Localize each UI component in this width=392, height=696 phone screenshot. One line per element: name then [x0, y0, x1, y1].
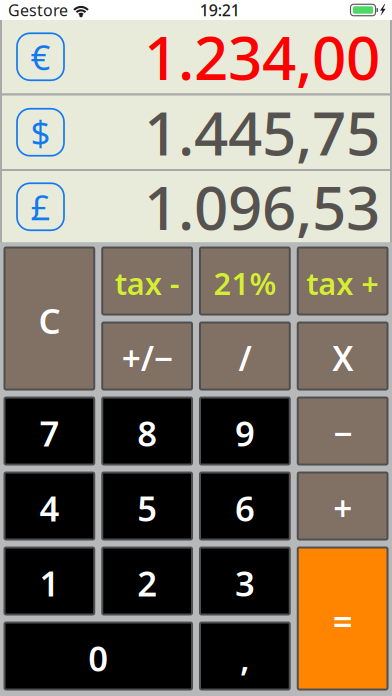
- staticText: ,: [240, 635, 250, 681]
- staticText: 5: [137, 485, 157, 531]
- button[interactable]: −: [298, 397, 388, 464]
- staticText: 19:21: [200, 0, 240, 21]
- button[interactable]: /: [200, 322, 290, 389]
- staticText: /: [238, 336, 251, 380]
- button[interactable]: 21%: [200, 247, 290, 314]
- button[interactable]: =: [298, 547, 388, 689]
- button[interactable]: tax -: [102, 247, 192, 314]
- button[interactable]: X: [298, 322, 388, 389]
- staticText: tax -: [115, 263, 180, 303]
- staticText: −: [333, 411, 352, 455]
- staticText: 1: [39, 560, 59, 606]
- staticText: 0: [88, 635, 108, 681]
- staticText: £: [30, 184, 50, 230]
- button[interactable]: C: [4, 247, 94, 389]
- staticText: 1.096,53: [144, 167, 380, 247]
- staticText: 2: [137, 560, 157, 606]
- button[interactable]: +/−: [102, 322, 192, 389]
- button[interactable]: tax +: [298, 247, 388, 314]
- staticText: =: [333, 597, 353, 643]
- staticText: 21%: [213, 263, 276, 303]
- staticText: +/−: [122, 336, 173, 380]
- button[interactable]: Select € currency: [17, 33, 64, 80]
- staticText: tax +: [306, 263, 379, 303]
- button[interactable]: 6: [200, 472, 290, 539]
- button[interactable]: 3: [200, 547, 290, 614]
- button[interactable]: 5: [102, 472, 192, 539]
- button[interactable]: +: [298, 472, 388, 539]
- button[interactable]: Select £ currency: [17, 183, 64, 230]
- button[interactable]: 0: [4, 622, 192, 689]
- staticText: 4: [39, 485, 59, 531]
- staticText: €: [30, 34, 50, 80]
- button[interactable]: ,: [200, 622, 290, 689]
- staticText: X: [332, 336, 353, 380]
- staticText: $: [30, 109, 50, 155]
- staticText: 1.445,75: [144, 92, 380, 172]
- staticText: 6: [235, 485, 255, 531]
- staticText: C: [38, 297, 60, 343]
- button[interactable]: 9: [200, 397, 290, 464]
- staticText: 8: [137, 410, 157, 456]
- staticText: 7: [39, 410, 59, 456]
- button[interactable]: 4: [4, 472, 94, 539]
- staticText: 1.234,00: [144, 17, 380, 97]
- staticText: +: [333, 486, 352, 530]
- staticText: Gestore: [8, 0, 68, 21]
- button[interactable]: Select $ currency: [17, 109, 64, 156]
- staticText: 9: [235, 410, 255, 456]
- button[interactable]: 8: [102, 397, 192, 464]
- staticText: 3: [235, 560, 255, 606]
- button[interactable]: 7: [4, 397, 94, 464]
- button[interactable]: 2: [102, 547, 192, 614]
- button[interactable]: 1: [4, 547, 94, 614]
